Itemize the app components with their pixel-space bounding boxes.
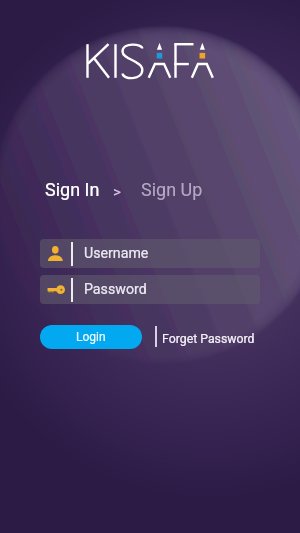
other: Password [47, 285, 65, 295]
staticText: Forget Password [162, 332, 255, 346]
button[interactable]: Forget Password [162, 332, 255, 346]
staticText: Sign Up [141, 179, 203, 200]
button[interactable]: Login [40, 325, 142, 349]
staticText: > [113, 183, 121, 201]
staticText: Sign In [45, 179, 100, 200]
button[interactable]: Sign Up [141, 179, 203, 200]
button[interactable]: Password [40, 275, 260, 304]
staticText: Login [76, 330, 106, 344]
other: Username [48, 246, 63, 261]
button[interactable]: Username [40, 239, 260, 268]
staticText: Username [84, 245, 149, 262]
button[interactable]: Sign In [45, 179, 100, 200]
staticText: Password [84, 281, 147, 298]
